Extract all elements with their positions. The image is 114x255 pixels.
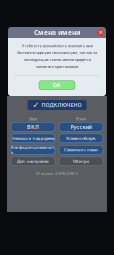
staticText: ✓ bbox=[32, 100, 39, 110]
staticText: Условия обслуж. bbox=[66, 136, 96, 141]
staticText: Помощь и поддержка bbox=[11, 136, 54, 141]
staticText: ✕ bbox=[98, 29, 102, 36]
staticText: Доп. настройки bbox=[17, 159, 49, 164]
button[interactable]: Связаться с нами bbox=[59, 145, 103, 154]
button[interactable]: Помощь и поддержка bbox=[11, 134, 55, 143]
staticText: У тебя есть возможность изменить имя бес… bbox=[17, 43, 97, 69]
staticText: ID игрока #2P8LQ9RCV bbox=[36, 171, 78, 176]
staticText: ВКЛ bbox=[27, 123, 39, 130]
button[interactable]: Русский bbox=[59, 122, 103, 131]
button[interactable]: Условия обслуж. bbox=[59, 134, 103, 143]
staticText: Смена имени bbox=[34, 28, 80, 37]
button[interactable]: Доп. настройки bbox=[11, 157, 55, 166]
staticText: Конфиденциальность bbox=[11, 144, 55, 155]
staticText: ОК bbox=[53, 82, 61, 89]
button[interactable]: ОК bbox=[39, 81, 75, 90]
staticText: Звук bbox=[29, 116, 37, 121]
button[interactable]: ВКЛ bbox=[11, 122, 55, 131]
staticText: Связаться с нами bbox=[64, 147, 98, 152]
staticText: ПОДКЛЮЧЕНО bbox=[41, 101, 81, 109]
button[interactable]: Конфиденциальность bbox=[11, 145, 55, 154]
staticText: Язык bbox=[76, 116, 86, 121]
button[interactable]: Close bbox=[97, 29, 104, 36]
button[interactable]: Об игре bbox=[59, 157, 103, 166]
staticText: Об игре bbox=[73, 159, 89, 164]
staticText: Русский bbox=[70, 123, 91, 130]
